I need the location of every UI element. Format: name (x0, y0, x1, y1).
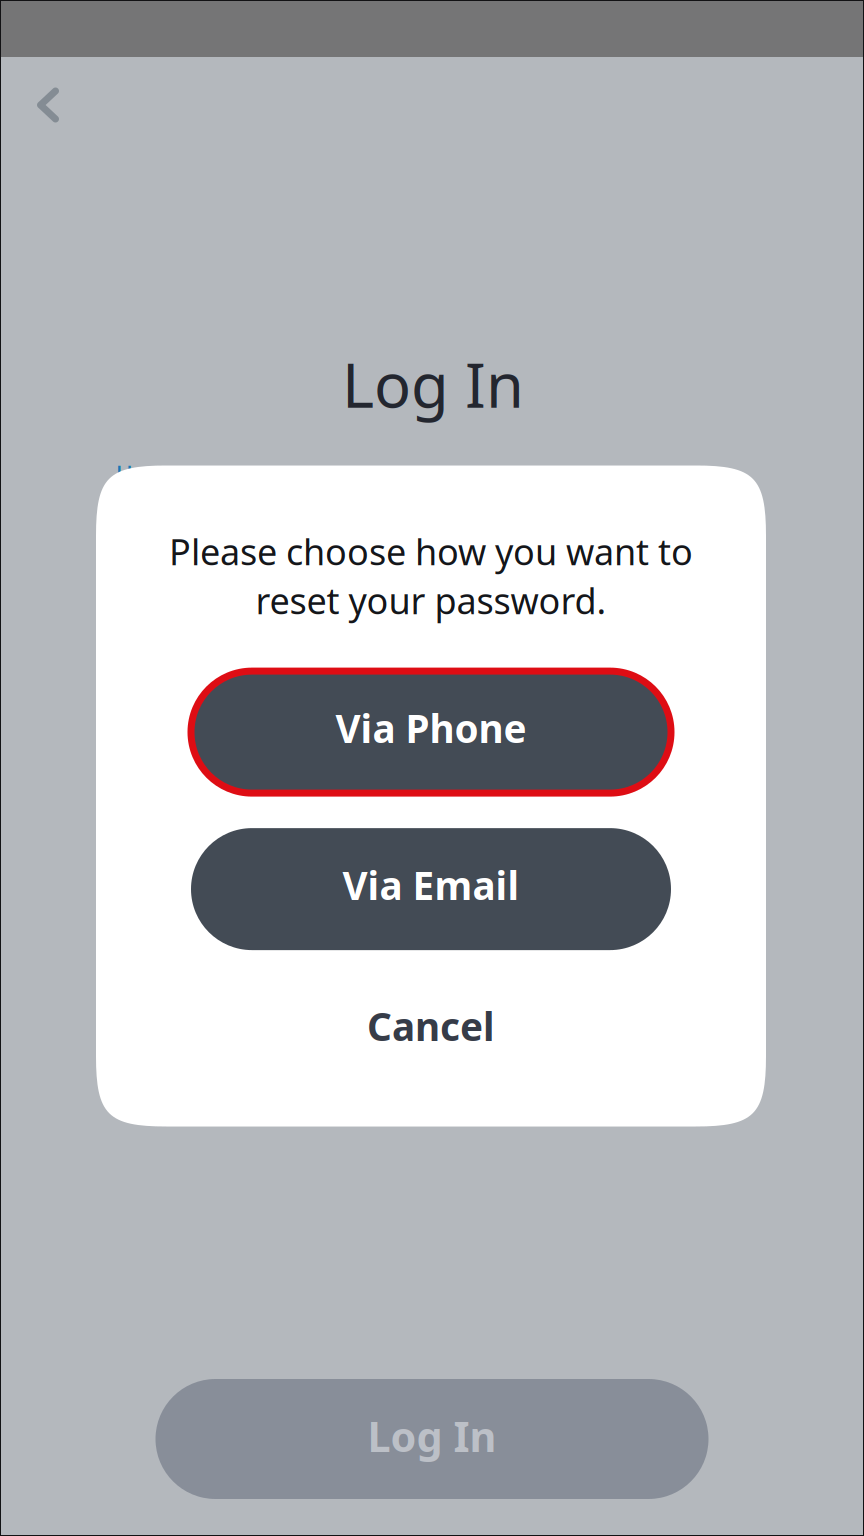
staticText: Log In (342, 343, 524, 425)
button[interactable]: Back (11, 68, 85, 142)
staticText: Log In (367, 1409, 496, 1463)
staticText: Please choose how you want to (169, 527, 693, 575)
staticText: Via Email (342, 859, 519, 911)
staticText: Cancel (367, 1000, 495, 1052)
button[interactable]: Via Email (191, 828, 671, 950)
staticText: Username (116, 459, 228, 489)
button[interactable]: Cancel (191, 981, 671, 1075)
button[interactable]: Log In (155, 1379, 708, 1499)
staticText: Via Phone (335, 702, 526, 754)
staticText: reset your password. (255, 576, 606, 624)
button[interactable]: Via Phone (191, 671, 671, 793)
